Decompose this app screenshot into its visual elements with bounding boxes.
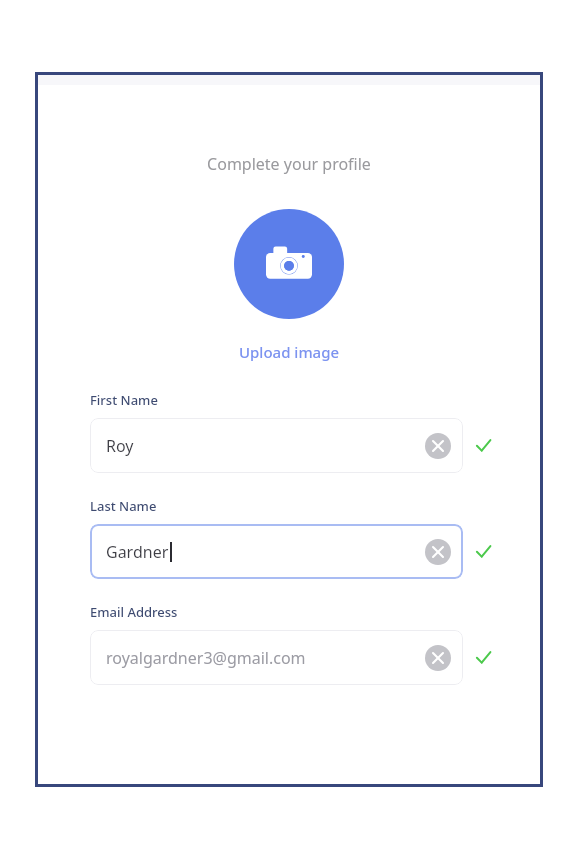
button[interactable]: Roy bbox=[90, 418, 463, 473]
staticText: Email Address bbox=[90, 603, 178, 621]
staticText: Gardner bbox=[106, 541, 169, 563]
button[interactable]: royalgardner3@gmail.com bbox=[90, 630, 463, 685]
staticText: Roy bbox=[106, 435, 134, 457]
button[interactable]: Upload image bbox=[231, 339, 348, 365]
button[interactable]: Clear Email Address bbox=[425, 645, 451, 671]
staticText: Upload image bbox=[239, 342, 340, 362]
staticText: First Name bbox=[90, 391, 158, 409]
button[interactable]: Clear First Name bbox=[425, 433, 451, 459]
staticText: royalgardner3@gmail.com bbox=[106, 647, 306, 669]
button[interactable]: Clear Last Name bbox=[425, 539, 451, 565]
button[interactable]: Upload profile photo bbox=[234, 209, 344, 319]
staticText: Complete your profile bbox=[207, 153, 371, 175]
staticText: Last Name bbox=[90, 497, 157, 515]
button[interactable]: Gardner bbox=[90, 524, 463, 579]
